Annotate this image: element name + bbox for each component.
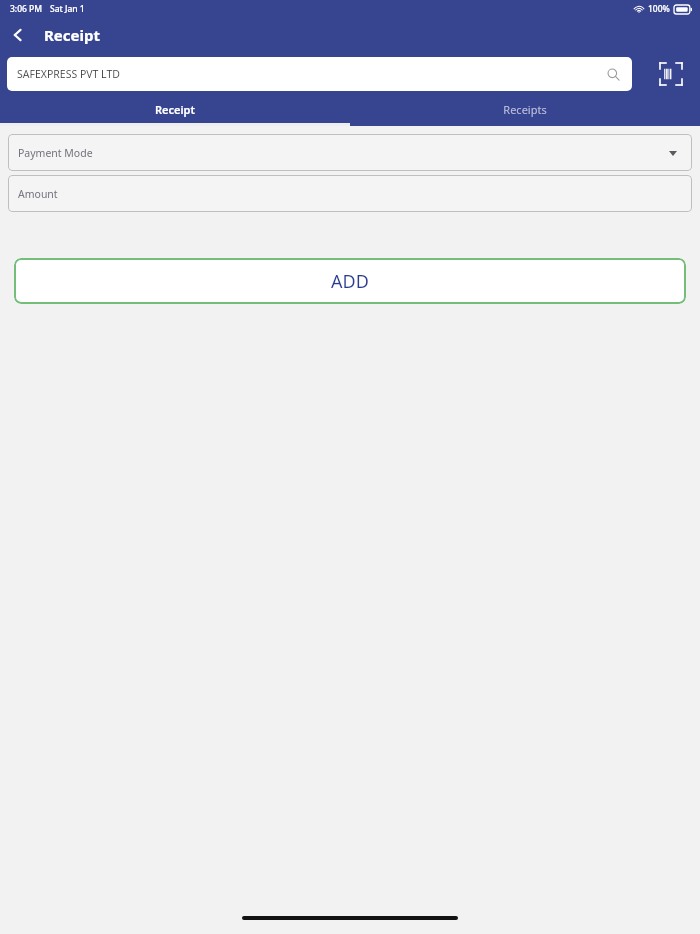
- staticText: Amount: [18, 187, 58, 201]
- button[interactable]: Receipts: [350, 95, 700, 123]
- button[interactable]: Scan barcode: [650, 53, 692, 95]
- button[interactable]: Amount: [8, 175, 692, 212]
- staticText: Sat Jan 1: [50, 3, 85, 15]
- button[interactable]: Payment Mode: [8, 134, 692, 171]
- staticText: 3:06 PM: [10, 3, 43, 15]
- button[interactable]: ADD: [14, 258, 686, 304]
- staticText: Receipt: [44, 25, 100, 45]
- other: Search: [604, 65, 622, 83]
- staticText: Receipts: [503, 102, 547, 117]
- staticText: 100%: [648, 3, 670, 15]
- staticText: SAFEXPRESS PVT LTD: [17, 67, 120, 81]
- button[interactable]: Back: [0, 17, 36, 53]
- staticText: ADD: [331, 269, 369, 294]
- button[interactable]: Receipt: [0, 95, 350, 123]
- button[interactable]: SAFEXPRESS PVT LTD: [7, 57, 632, 91]
- staticText: Receipt: [155, 102, 195, 117]
- staticText: Payment Mode: [18, 146, 93, 160]
